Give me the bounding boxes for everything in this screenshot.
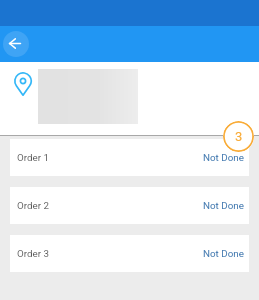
staticText: Order 3 bbox=[17, 248, 49, 259]
staticText: Not Done bbox=[203, 248, 244, 259]
button[interactable]: Order 1 bbox=[10, 139, 249, 176]
button[interactable]: Order 2 bbox=[10, 187, 249, 224]
staticText: 3 bbox=[235, 129, 243, 144]
staticText: Not Done bbox=[203, 152, 244, 163]
staticText: Order 1 bbox=[17, 152, 49, 163]
button[interactable]: Order 3 bbox=[10, 235, 249, 272]
staticText: Not Done bbox=[203, 200, 244, 211]
staticText: Order 2 bbox=[17, 200, 49, 211]
button[interactable]: 3 orders bbox=[223, 121, 254, 152]
button[interactable]: Back bbox=[3, 31, 29, 57]
